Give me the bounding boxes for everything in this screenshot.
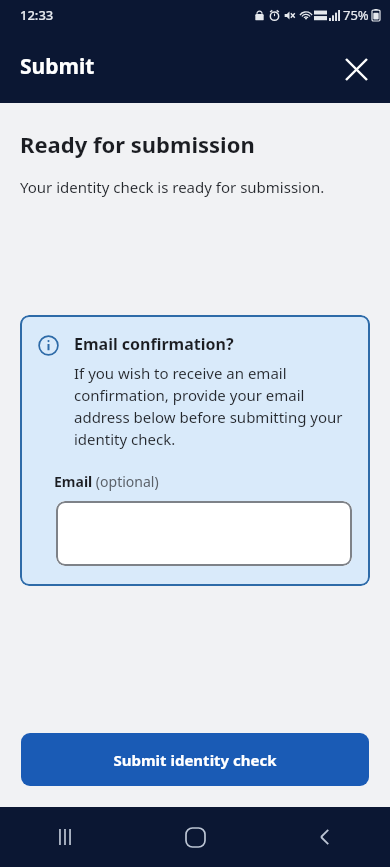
button[interactable]: Recents (0, 807, 130, 867)
staticText: Ready for submission (20, 129, 255, 159)
staticText: Email confirmation? (74, 333, 234, 355)
button[interactable]: Email input (56, 501, 352, 566)
button[interactable]: Back (260, 807, 390, 867)
staticText: 12:33 (20, 6, 54, 24)
button[interactable]: Home (130, 807, 260, 867)
button[interactable]: Submit identity check (21, 733, 369, 786)
button[interactable]: Close (332, 45, 380, 93)
button[interactable]: Email confirmation? (20, 315, 370, 586)
staticText: Your identity check is ready for submiss… (20, 177, 325, 197)
staticText: Email (optional) (54, 472, 159, 491)
staticText: 75% (343, 6, 369, 24)
staticText: If you wish to receive an email confirma… (74, 363, 354, 450)
staticText: Submit identity check (113, 750, 277, 770)
staticText: Submit (20, 52, 95, 81)
